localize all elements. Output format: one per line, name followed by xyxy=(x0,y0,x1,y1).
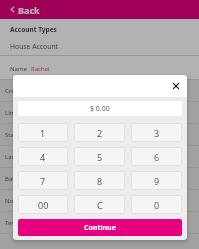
button[interactable]: 8 xyxy=(74,171,125,190)
staticText: Continue xyxy=(84,223,116,233)
staticText: Name xyxy=(10,65,27,73)
button[interactable]: 5 xyxy=(74,147,125,166)
staticText: 1 xyxy=(40,127,46,139)
button[interactable]: 3 xyxy=(131,123,182,142)
staticText: Terms xyxy=(5,219,23,227)
staticText: Back xyxy=(18,4,40,16)
staticText: 9 xyxy=(154,175,160,187)
staticText: Balance xyxy=(5,175,28,183)
staticText: 00 xyxy=(38,199,49,211)
staticText: Notes xyxy=(5,197,22,205)
staticText: Status xyxy=(5,131,23,139)
staticText: 7 xyxy=(40,175,46,187)
button[interactable]: 2 xyxy=(74,123,125,142)
staticText: 4 xyxy=(40,151,46,163)
staticText: 6 xyxy=(154,151,160,163)
button[interactable]: Close xyxy=(170,80,182,92)
button[interactable]: 6 xyxy=(131,147,182,166)
staticText: 2 xyxy=(97,127,103,139)
button[interactable]: 0 xyxy=(131,195,182,214)
staticText: 3 xyxy=(154,127,160,139)
button[interactable]: C xyxy=(74,195,125,214)
staticText: Account Types xyxy=(10,25,57,34)
staticText: 5 xyxy=(97,151,103,163)
button[interactable]: 4 xyxy=(18,147,68,166)
button[interactable]: $ 0.00 xyxy=(18,101,182,116)
staticText: Rachel xyxy=(31,65,50,73)
staticText: 8 xyxy=(97,175,103,187)
staticText: $ 0.00 xyxy=(90,104,110,114)
button[interactable]: Back xyxy=(0,0,199,19)
button[interactable]: Continue xyxy=(18,219,182,236)
staticText: Limit used xyxy=(5,109,35,117)
staticText: Credit limit xyxy=(5,87,36,95)
button[interactable]: 9 xyxy=(131,171,182,190)
staticText: House Account xyxy=(10,42,59,51)
staticText: C xyxy=(97,199,103,211)
button[interactable]: 00 xyxy=(18,195,68,214)
button[interactable]: 1 xyxy=(18,123,68,142)
button[interactable]: 7 xyxy=(18,171,68,190)
staticText: 0 xyxy=(154,199,160,211)
staticText: Last payment xyxy=(5,153,44,161)
